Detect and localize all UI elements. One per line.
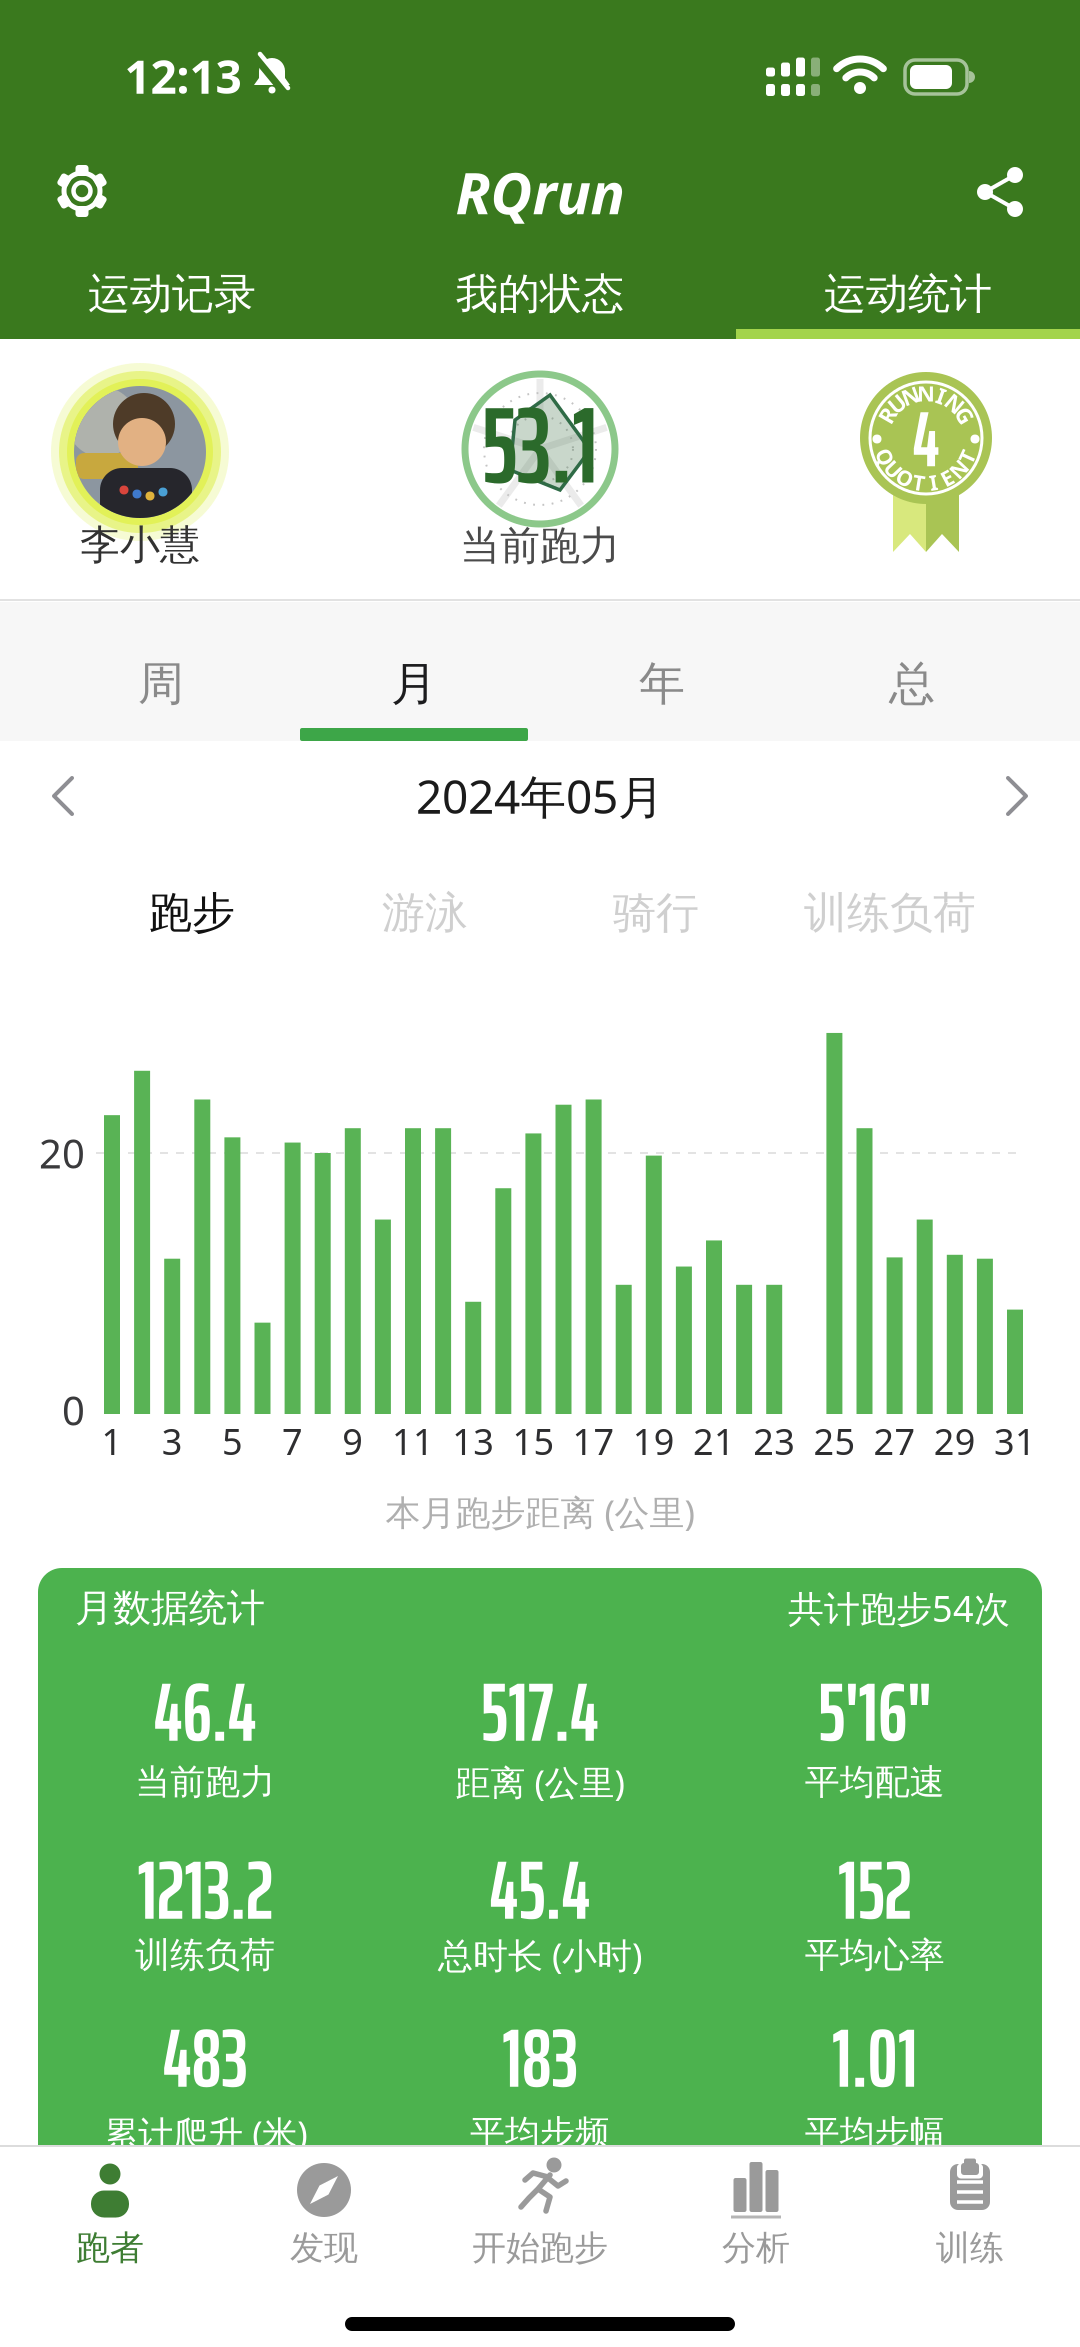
button[interactable]: 运动记录 (2, 250, 342, 338)
staticText: 1 (101, 1418, 122, 1464)
staticText: RQrun (455, 155, 624, 229)
staticText: N (917, 379, 935, 407)
staticText: Q (877, 443, 894, 471)
button[interactable]: 骑行 (566, 868, 746, 958)
staticText: 9 (342, 1418, 363, 1464)
staticText: 年 (639, 656, 685, 712)
staticText: U (889, 389, 906, 418)
staticText: I (937, 381, 946, 410)
staticText: 训练负荷 (804, 887, 976, 939)
staticText: 李小慧 (80, 521, 200, 569)
staticText: 跑者 (76, 2228, 144, 2268)
staticText: 骑行 (613, 887, 699, 939)
staticText: I (929, 469, 937, 496)
staticText: 累计爬升 (米) (103, 2110, 307, 2156)
button[interactable]: 分析 (681, 2147, 831, 2271)
staticText: 1.01 (832, 1993, 918, 2123)
staticText: O (896, 464, 913, 491)
button[interactable]: 游泳 (335, 868, 515, 958)
staticText: 11 (392, 1418, 434, 1464)
staticText: 31 (994, 1418, 1036, 1464)
staticText: 517.4 (481, 1647, 599, 1777)
staticText: 运动记录 (88, 269, 256, 319)
staticText: R (880, 401, 894, 430)
button[interactable]: 训练负荷 (780, 868, 1000, 958)
staticText: 12:13 (124, 46, 241, 106)
staticText: 17 (573, 1418, 615, 1464)
staticText: 训练负荷 (135, 1934, 275, 1976)
staticText: 152 (838, 1825, 912, 1955)
staticText: 3 (162, 1418, 183, 1464)
staticText: 5 (222, 1418, 243, 1464)
button[interactable]: 跑步 (102, 868, 282, 958)
staticText: 0 (62, 1384, 85, 1436)
button[interactable]: 发现 (249, 2147, 399, 2271)
staticText: 我的状态 (456, 269, 624, 319)
staticText: 运动统计 (824, 269, 992, 319)
staticText: 21 (693, 1418, 735, 1464)
staticText: 483 (163, 1993, 248, 2123)
staticText: 15 (512, 1418, 554, 1464)
staticText: 46.4 (154, 1647, 257, 1777)
staticText: 7 (282, 1418, 303, 1464)
staticText: 距离 (公里) (455, 1759, 624, 1805)
button[interactable]: 跑者 (35, 2147, 185, 2271)
button[interactable]: 总 (788, 629, 1036, 739)
button[interactable]: 年 (538, 629, 786, 739)
staticText: U (885, 455, 901, 483)
staticText: 183 (502, 1993, 578, 2123)
staticText: 45.4 (489, 1825, 590, 1955)
staticText: T (961, 443, 973, 470)
staticText: 平均配速 (805, 1761, 945, 1803)
button[interactable] (51, 363, 229, 541)
staticText: 当前跑力 (460, 522, 620, 570)
staticText: 23 (753, 1418, 795, 1464)
staticText: 29 (934, 1418, 976, 1464)
staticText: 1213.2 (137, 1825, 273, 1955)
staticText: 分析 (722, 2228, 790, 2268)
button[interactable]: 月 (290, 629, 538, 739)
button[interactable] (53, 162, 111, 220)
staticText: 周 (138, 656, 184, 712)
button[interactable] (33, 766, 93, 826)
staticText: N (946, 389, 964, 418)
staticText: 4 (912, 378, 939, 500)
staticText: 发现 (290, 2228, 358, 2268)
staticText: 共计跑步54次 (788, 1585, 1010, 1631)
staticText: N (902, 381, 920, 410)
button[interactable]: 我的状态 (370, 250, 710, 338)
staticText: 本月跑步距离 (公里) (385, 1489, 694, 1535)
staticText: 2024年05月 (416, 766, 664, 826)
staticText: 当前跑力 (135, 1761, 275, 1803)
staticText: 训练 (936, 2228, 1004, 2268)
staticText: G (957, 401, 973, 430)
staticText: E (941, 464, 953, 491)
button[interactable]: 训练 (895, 2147, 1045, 2271)
staticText: 20 (39, 1127, 85, 1179)
button[interactable] (987, 766, 1047, 826)
button[interactable] (972, 164, 1028, 220)
staticText: 19 (633, 1418, 675, 1464)
staticText: 25 (813, 1418, 855, 1464)
staticText: 跑步 (149, 887, 235, 939)
staticText: 游泳 (382, 887, 468, 939)
staticText: 平均步幅 (805, 2112, 945, 2154)
staticText: 月 (391, 656, 437, 712)
staticText: 平均步频 (470, 2112, 610, 2154)
staticText: 53.1 (482, 360, 598, 530)
button[interactable]: 运动统计 (738, 250, 1078, 338)
staticText: 27 (874, 1418, 916, 1464)
button[interactable]: 周 (37, 629, 285, 739)
staticText: 13 (452, 1418, 494, 1464)
staticText: 开始跑步 (472, 2228, 608, 2268)
button[interactable]: 开始跑步 (465, 2147, 615, 2271)
staticText: 月数据统计 (75, 1585, 265, 1631)
staticText: N (950, 455, 967, 483)
staticText: 总 (889, 656, 935, 712)
staticText: 5'16" (818, 1647, 931, 1777)
button[interactable]: 53.1 (465, 374, 615, 524)
staticText: 总时长 (小时) (438, 1932, 642, 1978)
staticText: T (913, 469, 925, 496)
staticText: 平均心率 (805, 1934, 945, 1976)
